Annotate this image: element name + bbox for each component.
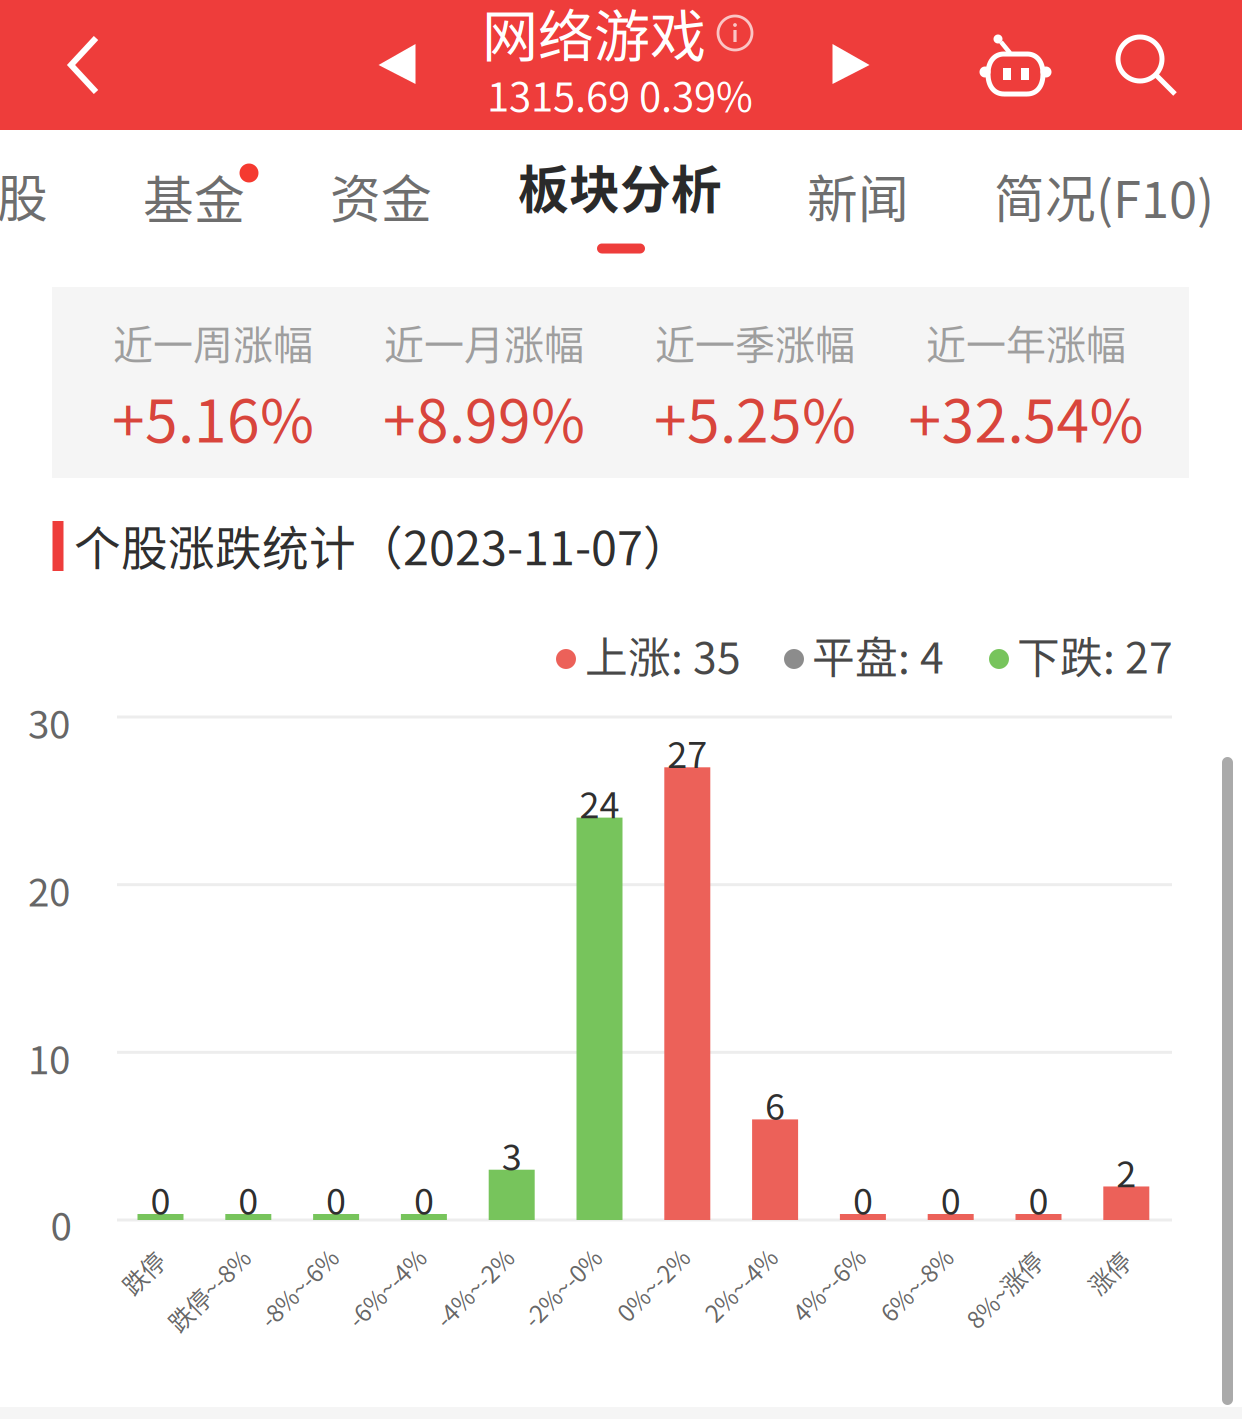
staticText: 2: [1116, 1145, 1136, 1197]
staticText: -8%~-6%: [249, 1270, 348, 1305]
staticText: 0: [50, 1196, 71, 1252]
staticText: 0: [414, 1173, 434, 1225]
staticText: 近一周涨幅: [113, 313, 313, 371]
staticText: 0: [238, 1173, 258, 1225]
button[interactable]: Previous sector: [347, 0, 447, 129]
staticText: 网络游戏: [482, 0, 706, 73]
staticText: 个股涨跌统计（2023-11-07）: [74, 511, 690, 579]
staticText: 基金: [143, 160, 245, 234]
staticText: 平盘: 4: [812, 624, 944, 686]
staticText: 股: [0, 158, 48, 232]
staticText: 0%~-2%: [607, 1267, 698, 1302]
staticText: 30: [28, 694, 70, 750]
staticText: 新闻: [807, 159, 909, 233]
staticText: 24: [579, 776, 619, 829]
staticText: +5.25%: [654, 374, 856, 459]
staticText: 跌停~-8%: [157, 1272, 261, 1307]
staticText: 6%~-8%: [871, 1267, 962, 1302]
button[interactable]: 基金: [114, 137, 274, 257]
staticText: 近一季涨幅: [655, 313, 855, 371]
staticText: 8%~涨停: [956, 1272, 1052, 1307]
staticText: 0: [853, 1173, 873, 1225]
staticText: 简况(F10): [994, 159, 1214, 233]
staticText: 涨停: [1085, 1255, 1133, 1290]
staticText: 2%~-4%: [695, 1267, 786, 1302]
button[interactable]: 板块分析: [480, 126, 760, 261]
staticText: 资金: [330, 159, 432, 233]
button[interactable]: Back: [19, 0, 149, 130]
button[interactable]: 新闻: [778, 136, 938, 256]
button[interactable]: 股: [0, 135, 87, 255]
staticText: 上涨: 35: [585, 624, 741, 686]
staticText: +5.16%: [112, 374, 314, 459]
staticText: 近一年涨幅: [926, 313, 1126, 371]
staticText: -4%~-2%: [425, 1270, 524, 1305]
staticText: 下跌: 27: [1017, 624, 1173, 686]
staticText: 0: [326, 1173, 346, 1225]
staticText: 0: [150, 1173, 170, 1225]
staticText: 4%~-6%: [783, 1267, 874, 1302]
button[interactable]: Next sector: [801, 0, 901, 129]
button[interactable]: Search: [1087, 1, 1207, 131]
button[interactable]: AI assistant: [956, 1, 1076, 131]
staticText: 板块分析: [518, 150, 722, 223]
staticText: 20: [28, 862, 70, 918]
staticText: -6%~-4%: [337, 1270, 436, 1305]
button[interactable]: 简况(F10): [964, 136, 1242, 256]
button[interactable]: 资金: [301, 136, 461, 256]
staticText: -2%~-0%: [512, 1270, 611, 1305]
staticText: +32.54%: [908, 374, 1143, 459]
staticText: 跌停: [119, 1255, 167, 1290]
staticText: 0: [941, 1173, 961, 1225]
staticText: 近一月涨幅: [384, 313, 584, 371]
staticText: 6: [765, 1078, 785, 1130]
staticText: 3: [502, 1129, 522, 1181]
staticText: 27: [667, 726, 707, 778]
staticText: +8.99%: [383, 374, 585, 459]
staticText: 0: [1028, 1173, 1048, 1225]
staticText: 10: [28, 1029, 70, 1085]
staticText: 1315.69 0.39%: [487, 65, 753, 123]
